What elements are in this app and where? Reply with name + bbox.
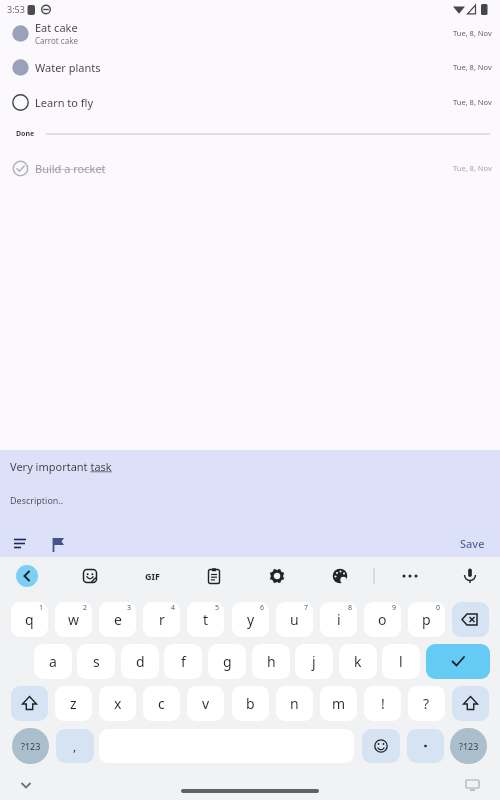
staticText: 0	[436, 603, 441, 613]
button[interactable]	[79, 565, 101, 587]
button[interactable]: Save	[460, 536, 485, 551]
staticText: GIF	[145, 570, 160, 582]
staticText: r	[159, 610, 165, 629]
staticText: 6	[260, 603, 265, 613]
staticText: q	[25, 610, 34, 629]
button[interactable]: ?123	[450, 728, 487, 764]
staticText: i	[337, 610, 341, 629]
button[interactable]: !	[364, 686, 401, 721]
button[interactable]	[203, 565, 225, 587]
button[interactable]: u	[276, 602, 313, 637]
button[interactable]: v	[187, 686, 224, 721]
button[interactable]	[6, 530, 34, 558]
button[interactable]	[11, 686, 48, 721]
button[interactable]: GIF	[138, 568, 166, 584]
staticText: u	[290, 610, 299, 629]
button[interactable]: d	[121, 644, 159, 679]
button[interactable]: ?123	[12, 728, 49, 764]
staticText: n	[290, 694, 299, 713]
button[interactable]: q	[11, 602, 48, 637]
button[interactable]: ,	[56, 729, 94, 763]
button[interactable]	[452, 686, 489, 721]
staticText: y	[247, 610, 255, 629]
staticText: a	[49, 652, 57, 671]
staticText: o	[378, 610, 387, 629]
staticText: j	[312, 652, 316, 671]
staticText: 8	[348, 603, 353, 613]
staticText: 2	[83, 603, 88, 613]
button[interactable]	[399, 565, 421, 587]
staticText: x	[114, 694, 122, 713]
staticText: 5	[215, 603, 220, 613]
staticText: s	[93, 652, 100, 671]
button[interactable]: j	[295, 644, 333, 679]
button[interactable]	[44, 530, 72, 558]
button[interactable]: Done	[0, 127, 500, 141]
button[interactable]: n	[276, 686, 313, 721]
staticText: e	[114, 610, 122, 629]
button[interactable]	[426, 644, 490, 679]
staticText: Done	[16, 129, 35, 139]
staticText: Build a rocket	[35, 161, 106, 176]
staticText: Carrot cake	[35, 35, 78, 46]
staticText: h	[267, 652, 276, 671]
button[interactable]: z	[55, 686, 92, 721]
staticText: m	[332, 694, 346, 713]
button[interactable]: p	[408, 602, 445, 637]
staticText: 3:53	[7, 3, 25, 15]
button[interactable]: Eat cake	[0, 17, 500, 49]
button[interactable]: s	[77, 644, 115, 679]
button[interactable]: c	[143, 686, 180, 721]
staticText: b	[246, 694, 255, 713]
staticText: k	[354, 652, 362, 671]
button[interactable]: x	[99, 686, 136, 721]
staticText: ,	[73, 738, 77, 754]
staticText: Tue, 8, Nov	[453, 163, 492, 173]
staticText: v	[202, 694, 210, 713]
staticText: Eat cake	[35, 20, 78, 35]
staticText: 7	[304, 603, 309, 613]
button[interactable]	[461, 777, 485, 795]
button[interactable]	[266, 565, 288, 587]
staticText: Tue, 8, Nov	[453, 97, 492, 107]
button[interactable]: i	[320, 602, 357, 637]
staticText: ?	[423, 694, 430, 713]
staticText: Save	[460, 536, 485, 551]
button[interactable]	[459, 565, 481, 587]
button[interactable]	[16, 565, 38, 587]
staticText: 4	[171, 603, 176, 613]
staticText: Tue, 8, Nov	[453, 28, 492, 38]
staticText: Water plants	[35, 60, 101, 75]
staticText: !	[381, 694, 385, 713]
button[interactable]: g	[208, 644, 246, 679]
button[interactable]	[452, 602, 489, 637]
staticText: p	[422, 610, 431, 629]
button[interactable]: ?	[408, 686, 445, 721]
button[interactable]: w	[55, 602, 92, 637]
button[interactable]: y	[232, 602, 269, 637]
staticText: Description..	[10, 494, 64, 506]
staticText: f	[181, 652, 186, 671]
button[interactable]	[362, 729, 400, 763]
button[interactable]: b	[232, 686, 269, 721]
button[interactable]: o	[364, 602, 401, 637]
button[interactable]: r	[143, 602, 180, 637]
button[interactable]: m	[320, 686, 357, 721]
button[interactable]: h	[252, 644, 290, 679]
button[interactable]: Build a rocket	[0, 153, 500, 183]
button[interactable]: e	[99, 602, 136, 637]
button[interactable]: Water plants	[0, 52, 500, 82]
button[interactable]	[407, 729, 444, 763]
staticText: z	[70, 694, 77, 713]
button[interactable]: f	[164, 644, 202, 679]
button[interactable]: k	[339, 644, 377, 679]
staticText: w	[68, 610, 80, 629]
button[interactable]: t	[187, 602, 224, 637]
button[interactable]: l	[382, 644, 420, 679]
button[interactable]: Learn to fly	[0, 87, 500, 117]
button[interactable]: a	[34, 644, 72, 679]
button[interactable]	[13, 775, 39, 797]
button[interactable]	[329, 565, 351, 587]
staticText: 9	[392, 603, 397, 613]
